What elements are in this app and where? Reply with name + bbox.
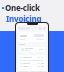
button[interactable] xyxy=(18,32,46,42)
staticText: One-click xyxy=(5,2,40,13)
staticText: Invoicing xyxy=(6,13,42,24)
button[interactable] xyxy=(19,47,45,52)
button[interactable] xyxy=(18,55,46,71)
